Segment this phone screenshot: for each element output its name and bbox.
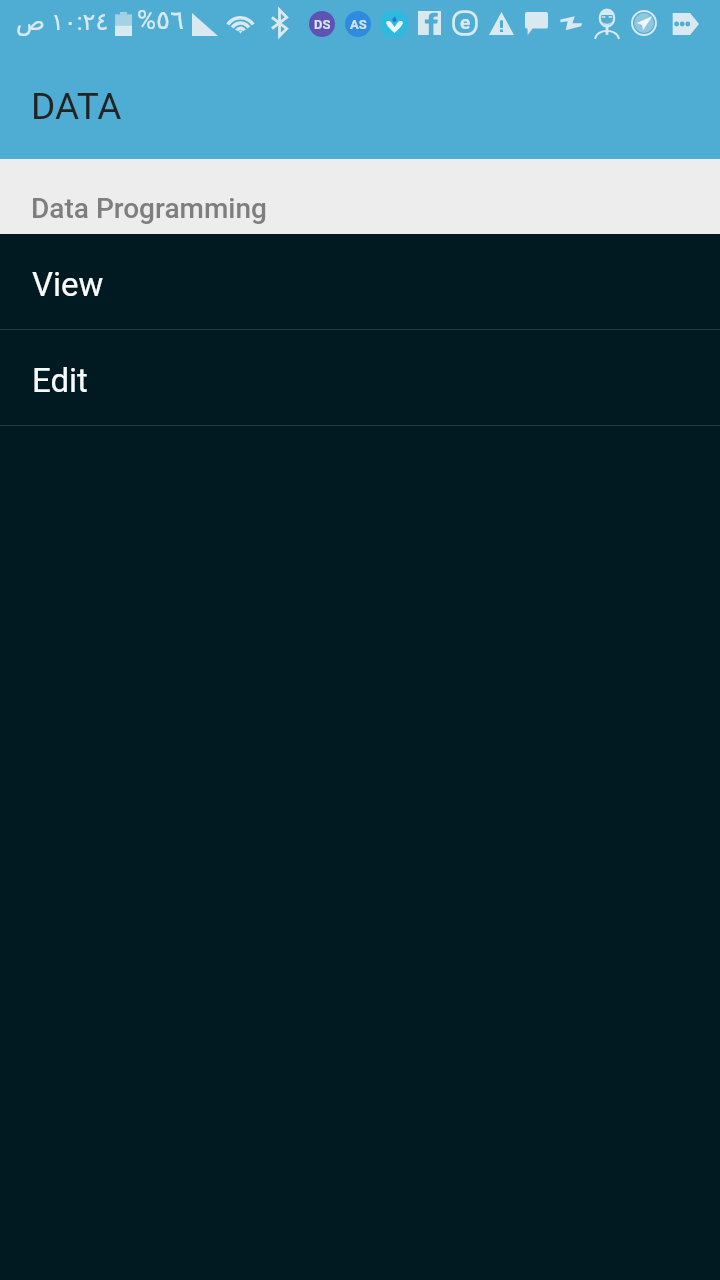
other: Bluetooth (270, 10, 289, 36)
other: Facebook (418, 11, 441, 35)
staticText: DS (314, 17, 331, 32)
button[interactable]: View (0, 234, 720, 329)
other: Email (452, 10, 478, 36)
other: Warning (489, 12, 514, 35)
other: Wi-Fi (224, 11, 257, 35)
other: Mobile signal (192, 13, 218, 36)
other: Zedge (559, 13, 583, 35)
staticText: DATA (31, 85, 122, 128)
button[interactable]: Edit (0, 330, 720, 425)
other: Messages (525, 12, 548, 35)
other: Contact (595, 9, 619, 39)
staticText: Edit (32, 361, 88, 400)
other: More notifications (671, 13, 699, 35)
staticText: e (460, 11, 471, 33)
other: Telegram (631, 10, 657, 36)
staticText: AS (350, 17, 367, 32)
staticText: %٥٦ (137, 5, 184, 35)
staticText: Data Programming (31, 192, 267, 225)
staticText: ١٠:٢٤ ص (16, 8, 109, 36)
staticText: View (32, 265, 104, 304)
other: Notification (381, 11, 407, 37)
other: Battery (115, 12, 132, 36)
